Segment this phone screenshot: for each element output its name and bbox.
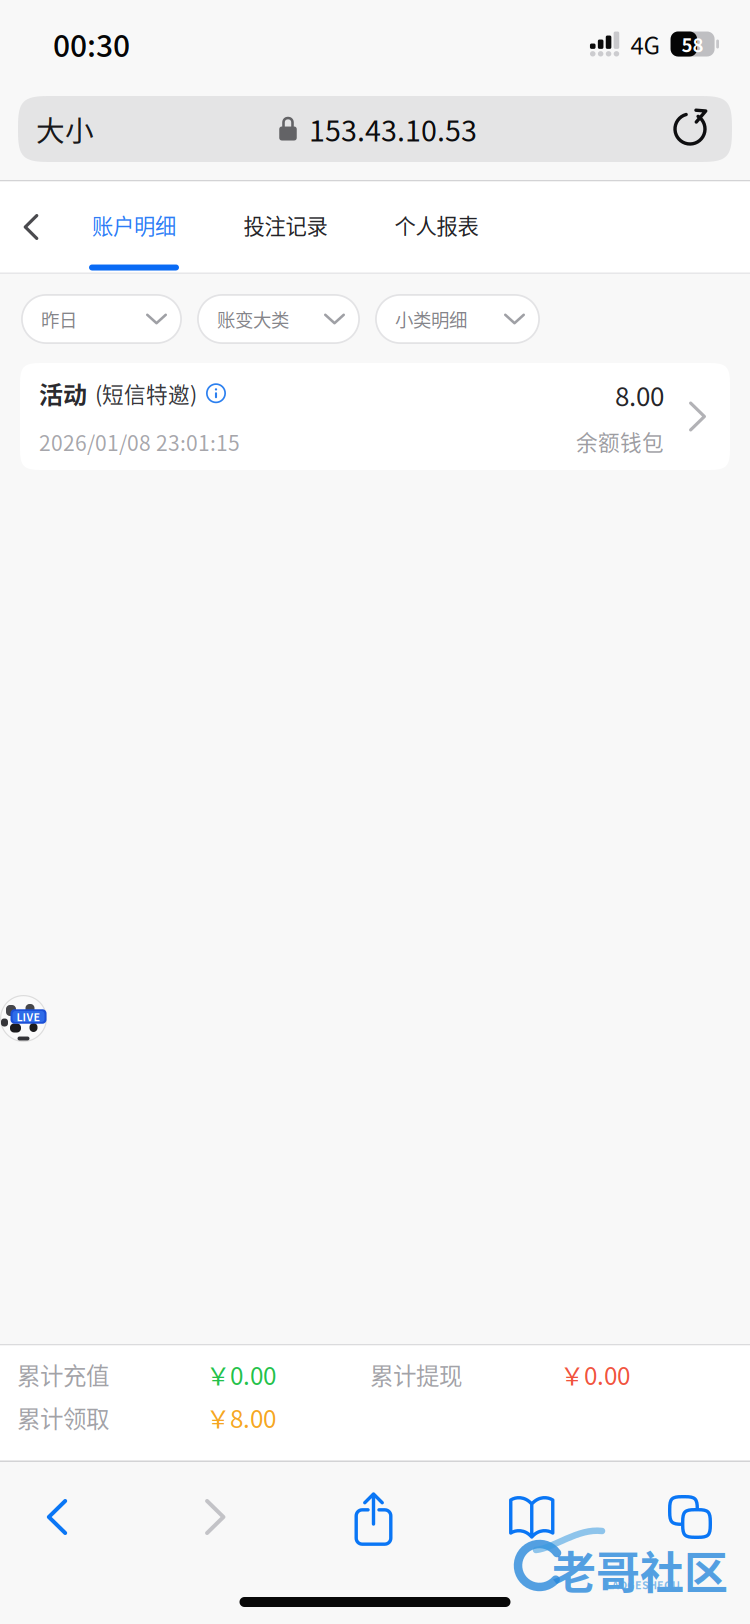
staticText: 昨日 <box>41 306 77 332</box>
button[interactable]: 大小 <box>18 96 146 162</box>
staticText: 个人报表 <box>394 209 478 240</box>
button[interactable]: 投注记录 <box>206 181 365 272</box>
staticText: 账变大类 <box>217 306 289 332</box>
staticText: 大小 <box>36 108 94 150</box>
button[interactable]: 账变大类 <box>197 294 360 344</box>
staticText: 4G <box>631 27 661 61</box>
button[interactable]: Back <box>0 181 62 272</box>
button[interactable]: Tabs <box>642 1480 738 1554</box>
staticText: 余额钱包 <box>576 426 664 457</box>
staticText: 账户明细 <box>92 209 176 240</box>
button[interactable]: Share <box>325 1480 421 1554</box>
staticText: 累计提现 <box>370 1357 462 1391</box>
staticText: 活动 <box>39 376 87 411</box>
button[interactable]: 账户明细 <box>62 181 206 272</box>
button[interactable]: Bookmarks <box>484 1480 580 1554</box>
button[interactable]: 个人报表 <box>365 181 508 272</box>
staticText: 00:30 <box>53 22 130 66</box>
staticText: LIVE <box>16 1009 40 1024</box>
button[interactable]: Back <box>9 1480 105 1554</box>
staticText: 2026/01/08 23:01:15 <box>39 427 240 457</box>
staticText: 累计领取 <box>17 1400 109 1434</box>
staticText: 老哥社区 <box>552 1538 728 1602</box>
staticText: LAOGESHEQU <box>606 1577 680 1592</box>
button[interactable]: Reload <box>648 96 732 162</box>
staticText: ￥0.00 <box>560 1357 630 1392</box>
staticText: (短信特邀) <box>95 378 197 409</box>
staticText: 153.43.10.53 <box>309 108 477 150</box>
staticText: 8.00 <box>615 376 664 414</box>
button[interactable]: Live <box>0 995 47 1042</box>
button[interactable]: Forward <box>167 1480 263 1554</box>
staticText: ￥0.00 <box>206 1357 276 1392</box>
staticText: 小类明细 <box>395 306 467 332</box>
button[interactable]: 活动 <box>20 363 730 470</box>
button[interactable]: 昨日 <box>21 294 182 344</box>
staticText: 投注记录 <box>243 209 327 240</box>
button[interactable]: 小类明细 <box>375 294 540 344</box>
staticText: 累计充值 <box>17 1357 109 1391</box>
staticText: 58 <box>682 30 704 57</box>
staticText: ￥8.00 <box>206 1400 276 1435</box>
